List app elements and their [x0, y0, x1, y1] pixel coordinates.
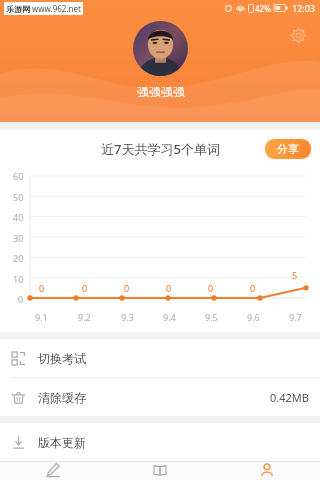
button[interactable]: 我的 [213, 462, 320, 480]
staticText: 9.1 [35, 311, 48, 323]
staticText: 版本更新 [38, 435, 86, 450]
staticText: 9.2 [78, 311, 91, 323]
staticText: 30 [13, 232, 24, 243]
staticText: 0 [18, 293, 24, 304]
staticText: 20 [13, 252, 24, 263]
staticText: 0 [166, 282, 172, 294]
staticText: 切换考试 [38, 351, 86, 366]
staticText: 0 [124, 282, 130, 294]
staticText: 0 [208, 282, 214, 294]
button[interactable]: 切换考试 [0, 339, 320, 377]
button[interactable]: 学词 [0, 462, 106, 480]
button[interactable]: 版本更新 [0, 423, 320, 461]
staticText: 5 [292, 269, 298, 281]
staticText: 乐游网 [6, 4, 30, 14]
staticText: 9.4 [163, 311, 176, 323]
staticText: 0.42MB [270, 390, 309, 405]
staticText: 10 [13, 273, 24, 284]
staticText: 9.6 [247, 311, 260, 323]
button[interactable]: 分享 [265, 139, 311, 159]
staticText: 9.3 [121, 311, 134, 323]
staticText: 清除缓存 [38, 390, 86, 405]
button[interactable]: Profile avatar [133, 21, 188, 76]
staticText: 近7天共学习5个单词 [101, 140, 220, 158]
staticText: 42% [255, 3, 271, 14]
button[interactable]: 强化 [106, 462, 213, 480]
staticText: 40 [13, 211, 24, 222]
staticText: 12:03 [292, 2, 316, 14]
staticText: 50 [13, 191, 24, 202]
staticText: 9.5 [205, 311, 218, 323]
staticText: 0 [250, 282, 256, 294]
staticText: www.962.net [32, 3, 81, 14]
staticText: 0 [82, 282, 88, 294]
button[interactable]: Settings [284, 21, 312, 49]
staticText: 分享 [277, 142, 299, 156]
staticText: 60 [13, 170, 24, 181]
staticText: 强强强强 [137, 84, 185, 99]
staticText: 0 [39, 282, 45, 294]
staticText: 9.7 [289, 311, 302, 323]
button[interactable]: 清除缓存 [0, 378, 320, 416]
